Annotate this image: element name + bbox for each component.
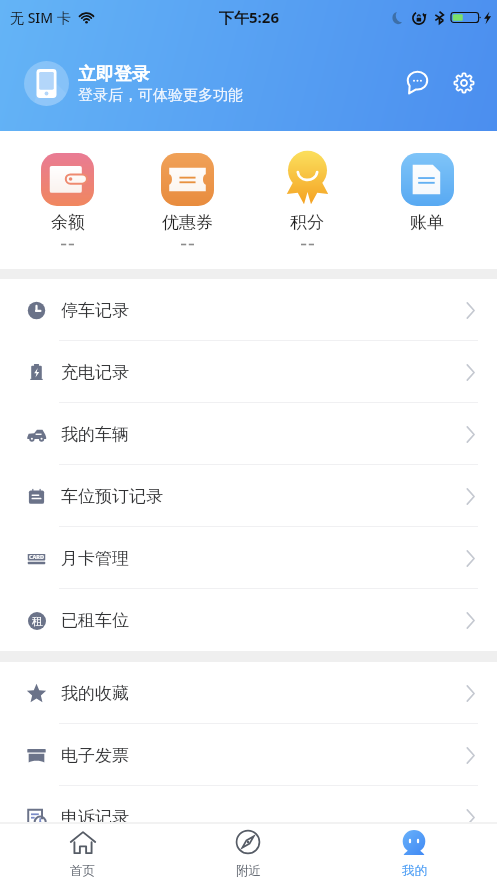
staticText: CARD (29, 553, 44, 560)
staticText: 我的收藏 (61, 683, 129, 704)
button[interactable]: 余额 (8, 153, 127, 246)
button[interactable]: 首页 (0, 824, 165, 883)
staticText: 车位预订记录 (61, 486, 163, 507)
staticText: 月卡管理 (61, 548, 129, 569)
button[interactable] (24, 61, 69, 106)
staticText: 我的 (402, 863, 427, 879)
button[interactable]: 申诉记录 (0, 786, 497, 848)
staticText: 停车记录 (61, 300, 129, 321)
button[interactable]: 账单 (367, 153, 487, 233)
button[interactable]: 停车记录 (0, 279, 497, 341)
staticText: 充电记录 (61, 362, 129, 383)
staticText: 申诉记录 (61, 807, 129, 828)
staticText: 首页 (70, 863, 95, 879)
staticText: 已租车位 (61, 610, 129, 631)
staticText: 无 SIM 卡 (10, 8, 71, 27)
staticText: 余额 (51, 212, 85, 233)
staticText: 我的车辆 (61, 424, 129, 445)
button[interactable]: 我的收藏 (0, 662, 497, 724)
staticText: 登录后，可体验更多功能 (78, 86, 243, 105)
button[interactable]: 优惠券 (127, 153, 247, 246)
button[interactable]: CARD (0, 527, 497, 589)
staticText: 租 (32, 614, 43, 628)
staticText: 下午5:26 (219, 7, 279, 27)
staticText: 优惠券 (162, 212, 213, 233)
button[interactable]: Messages (395, 61, 439, 105)
button[interactable]: 车位预订记录 (0, 465, 497, 527)
staticText: 积分 (290, 212, 324, 233)
staticText: 立即登录 (78, 63, 150, 86)
staticText: 账单 (410, 212, 444, 233)
button[interactable]: 我的 (331, 824, 497, 883)
button[interactable]: 我的车辆 (0, 403, 497, 465)
button[interactable]: Settings (442, 61, 486, 105)
button[interactable]: 租 (0, 589, 497, 651)
staticText: 电子发票 (61, 745, 129, 766)
staticText: 附近 (236, 863, 261, 879)
button[interactable]: 积分 (247, 153, 367, 246)
button[interactable]: 电子发票 (0, 724, 497, 786)
button[interactable]: 附近 (165, 824, 331, 883)
button[interactable]: 充电记录 (0, 341, 497, 403)
